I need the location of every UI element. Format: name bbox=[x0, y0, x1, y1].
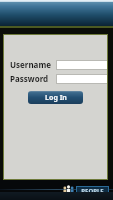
staticText: Log In bbox=[45, 93, 67, 103]
staticText: Username bbox=[10, 59, 51, 70]
button[interactable]: People logo bbox=[62, 184, 109, 197]
staticText: Password bbox=[10, 73, 49, 84]
staticText: PEOPLE bbox=[81, 187, 104, 195]
button[interactable]: Log In bbox=[28, 91, 83, 104]
